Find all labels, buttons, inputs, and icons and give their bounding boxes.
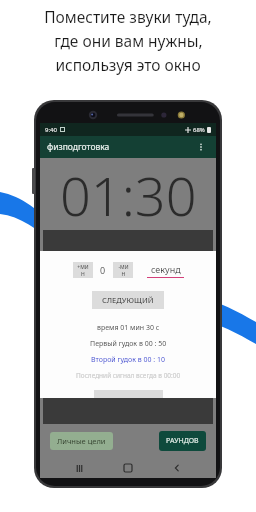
staticText: секунд [151,263,181,275]
button[interactable]: Личные цели [50,432,113,450]
staticText: 9:40 [45,126,57,134]
staticText: физподготовка [47,141,110,153]
staticText: Личные цели [57,436,106,446]
staticText: Поместите звуки туда, [44,6,212,27]
button[interactable]: -МИ Н [113,262,133,278]
button[interactable]: РАУНДОВ [159,431,206,451]
button[interactable]: +МИ Н [73,262,93,278]
staticText: -МИ Н [118,264,129,277]
button[interactable]: More options [193,139,209,155]
staticText: РАУНДОВ [166,436,199,446]
staticText: Второй гудок в 00 : 10 [91,355,165,365]
staticText: где они вам нужны, [54,30,203,51]
staticText: +МИ Н [77,264,89,277]
button[interactable]: Home [118,458,138,478]
staticText: время 01 мин 30 с [97,323,160,333]
button[interactable]: СЛЕДУЮЩИЙ [92,291,164,309]
button[interactable]: физподготовка [40,136,216,158]
button[interactable]: Recents [69,458,89,478]
staticText: 68% [193,126,205,134]
staticText: 01:30 [60,158,197,230]
staticText: Последний сигнал всегда в 00:00 [76,371,181,380]
button[interactable]: Back [167,458,187,478]
staticText: 0 [100,264,106,276]
staticText: используя это окно [55,54,201,75]
button[interactable]: секунд [147,263,184,278]
staticText: СЛЕДУЮЩИЙ [102,295,154,305]
staticText: Первый гудок в 00 : 50 [90,339,167,349]
